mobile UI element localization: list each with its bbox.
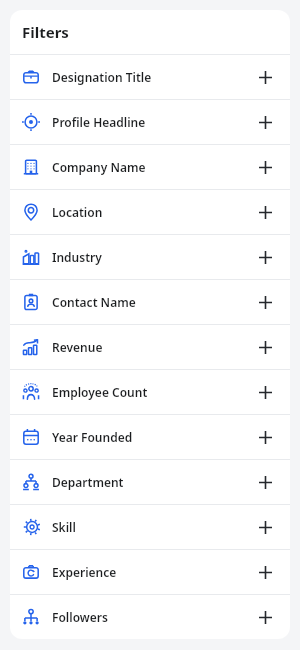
staticText: Industry	[52, 249, 252, 265]
staticText: Location	[52, 204, 252, 220]
button[interactable]: Skill	[10, 505, 290, 549]
button[interactable]: Add Industry filter	[252, 244, 278, 270]
staticText: Followers	[52, 609, 252, 625]
button[interactable]: Add Designation Title filter	[252, 64, 278, 90]
button[interactable]: Profile Headline	[10, 100, 290, 144]
button[interactable]: Location	[10, 190, 290, 234]
staticText: Employee Count	[52, 384, 252, 400]
button[interactable]: Experience	[10, 550, 290, 594]
button[interactable]: Add Skill filter	[252, 514, 278, 540]
button[interactable]: Year Founded	[10, 415, 290, 459]
button[interactable]: Add Contact Name filter	[252, 289, 278, 315]
staticText: Contact Name	[52, 294, 252, 310]
button[interactable]: Add Department filter	[252, 469, 278, 495]
button[interactable]: Followers	[10, 595, 290, 639]
staticText: Skill	[52, 519, 252, 535]
staticText: Profile Headline	[52, 114, 252, 130]
button[interactable]: Add Revenue filter	[252, 334, 278, 360]
button[interactable]: Add Profile Headline filter	[252, 109, 278, 135]
button[interactable]: Add Location filter	[252, 199, 278, 225]
button[interactable]: Add Employee Count filter	[252, 379, 278, 405]
button[interactable]: Employee Count	[10, 370, 290, 414]
staticText: Company Name	[52, 159, 252, 175]
staticText: Filters	[22, 22, 69, 42]
staticText: Year Founded	[52, 429, 252, 445]
button[interactable]: Add Year Founded filter	[252, 424, 278, 450]
staticText: Department	[52, 474, 252, 490]
button[interactable]: Department	[10, 460, 290, 504]
button[interactable]: Add Experience filter	[252, 559, 278, 585]
button[interactable]: Revenue	[10, 325, 290, 369]
staticText: Revenue	[52, 339, 252, 355]
button[interactable]: Add Company Name filter	[252, 154, 278, 180]
button[interactable]: Contact Name	[10, 280, 290, 324]
button[interactable]: Add Followers filter	[252, 604, 278, 630]
button[interactable]: Industry	[10, 235, 290, 279]
staticText: Experience	[52, 564, 252, 580]
button[interactable]: Company Name	[10, 145, 290, 189]
staticText: Designation Title	[52, 69, 252, 85]
button[interactable]: Designation Title	[10, 55, 290, 99]
